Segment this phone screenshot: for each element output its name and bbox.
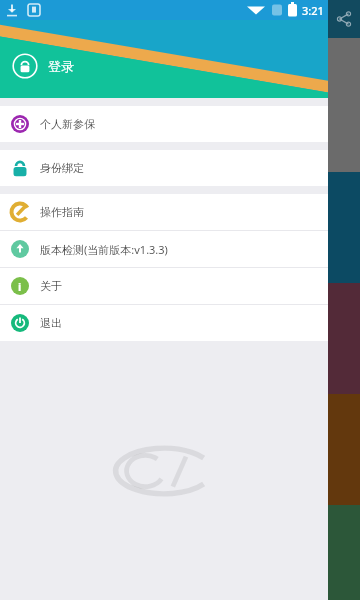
staticText: 登录 [48,58,74,74]
button[interactable]: 退出 [0,305,328,341]
staticText: 退出 [40,316,62,330]
staticText: 3:21 [302,3,324,18]
button[interactable]: 操作指南 [0,194,328,230]
button[interactable]: i [0,268,328,304]
staticText: 个人新参保 [40,117,95,131]
button[interactable]: 登录 [12,53,74,79]
button[interactable]: 版本检测(当前版本:v1.3.3) [0,231,328,267]
staticText: 版本检测(当前版本:v1.3.3) [40,242,168,257]
button[interactable]: 个人新参保 [0,106,328,142]
staticText: 操作指南 [40,205,84,219]
button[interactable]: 身份绑定 [0,150,328,186]
staticText: 关于 [40,279,62,293]
staticText: 身份绑定 [40,161,84,175]
staticText: i [18,279,22,294]
button[interactable]: Share [328,0,360,38]
